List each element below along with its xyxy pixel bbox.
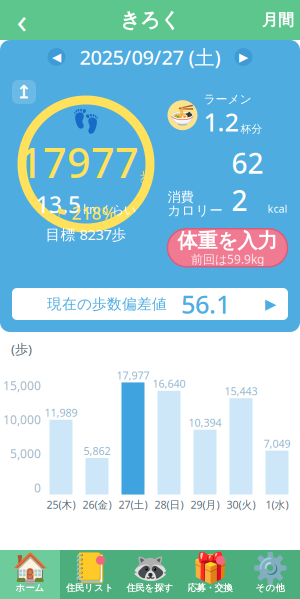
- staticText: 622: [231, 144, 263, 219]
- button[interactable]: 体重を入力: [167, 229, 287, 267]
- staticText: 11,989: [44, 406, 77, 420]
- staticText: 16,640: [152, 377, 185, 391]
- staticText: 25(木): [46, 497, 75, 512]
- staticText: 27(土): [118, 497, 147, 512]
- button[interactable]: ⚙️: [240, 550, 300, 599]
- staticText: カロリー: [167, 202, 222, 219]
- staticText: 杯分: [240, 122, 262, 135]
- staticText: 29(月): [190, 497, 219, 512]
- staticText: ▶: [239, 50, 248, 64]
- staticText: 5,000: [10, 446, 41, 462]
- staticText: その他: [255, 582, 284, 594]
- button[interactable]: 🏠: [0, 550, 60, 599]
- staticText: ホーム: [15, 582, 44, 594]
- staticText: 応募・交換: [187, 582, 232, 594]
- staticText: 28(日): [154, 497, 183, 512]
- staticText: 7,049: [263, 436, 290, 451]
- staticText: 🎁: [191, 551, 228, 585]
- staticText: 15,443: [224, 384, 257, 398]
- staticText: 5,862: [83, 444, 110, 458]
- staticText: 前回は59.9kg: [191, 251, 264, 267]
- button[interactable]: 月間: [256, 0, 300, 40]
- button[interactable]: 🎁: [180, 550, 240, 599]
- staticText: ⚑: [55, 205, 67, 220]
- staticText: 56.1: [167, 287, 230, 321]
- staticText: 17977: [19, 134, 139, 189]
- staticText: 体重を入力: [177, 228, 277, 253]
- staticText: 住民リスト: [66, 582, 114, 594]
- staticText: ⚙️: [251, 551, 288, 585]
- button[interactable]: Share: [12, 80, 36, 104]
- button[interactable]: Back: [0, 0, 44, 40]
- staticText: 10,394: [188, 416, 221, 430]
- staticText: 🍜: [170, 104, 195, 127]
- staticText: kmくらい: [83, 201, 136, 217]
- staticText: 17,977: [116, 368, 149, 382]
- staticText: ‹: [16, 0, 27, 43]
- staticText: 0: [34, 480, 41, 496]
- staticText: 1.2: [203, 105, 238, 138]
- staticText: 月間: [262, 10, 294, 30]
- button[interactable]: 現在の歩数偏差値: [12, 288, 288, 320]
- staticText: ▶: [265, 296, 276, 312]
- button[interactable]: Next day: [234, 48, 252, 66]
- staticText: ◀: [52, 50, 61, 64]
- button[interactable]: 📒: [60, 550, 120, 599]
- button[interactable]: Previous day: [47, 48, 65, 66]
- staticText: 📒: [71, 551, 108, 585]
- staticText: きろく: [120, 8, 180, 32]
- staticText: 消費: [167, 189, 193, 205]
- staticText: 26(金): [82, 497, 111, 512]
- staticText: ↥: [16, 81, 32, 103]
- staticText: 1(水): [265, 497, 288, 512]
- staticText: 2025/09/27 (土): [79, 44, 220, 70]
- staticText: 218%: [71, 201, 116, 224]
- staticText: 15,000: [3, 378, 41, 394]
- staticText: 13.5: [36, 189, 81, 219]
- staticText: 🦝: [131, 551, 168, 585]
- staticText: 🏠: [11, 551, 48, 585]
- staticText: ラーメン: [203, 92, 251, 107]
- staticText: 👣: [72, 109, 100, 134]
- staticText: 目標 8237歩: [45, 224, 126, 244]
- staticText: 歩: [140, 168, 153, 184]
- staticText: (歩): [11, 340, 32, 358]
- button[interactable]: 🦝: [120, 550, 180, 599]
- staticText: 住民を探す: [126, 582, 173, 594]
- staticText: 10,000: [3, 412, 41, 428]
- staticText: kcal: [267, 202, 287, 216]
- staticText: 30(火): [226, 497, 255, 512]
- staticText: 現在の歩数偏差値: [47, 295, 167, 313]
